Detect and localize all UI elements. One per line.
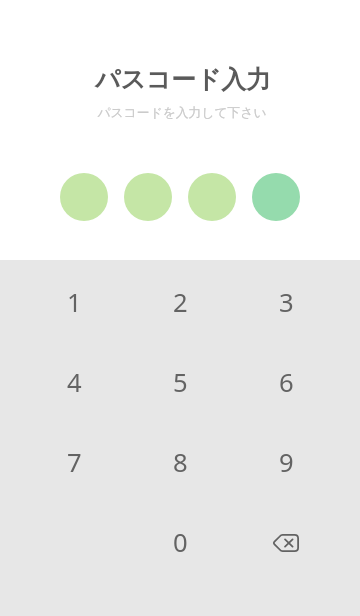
button[interactable]: 1 — [21, 262, 127, 342]
button[interactable]: 0 — [127, 502, 233, 582]
staticText: 9 — [279, 445, 294, 480]
button[interactable]: 2 — [127, 262, 233, 342]
button[interactable]: 5 — [127, 342, 233, 422]
button[interactable]: 4 — [21, 342, 127, 422]
button[interactable]: 7 — [21, 422, 127, 502]
staticText: 6 — [279, 365, 294, 400]
staticText: 5 — [173, 365, 188, 400]
staticText: 7 — [67, 445, 82, 480]
staticText: 0 — [173, 525, 188, 560]
staticText: 4 — [67, 365, 82, 400]
button[interactable]: 3 — [233, 262, 339, 342]
button[interactable]: Delete — [233, 502, 339, 582]
button[interactable]: 9 — [233, 422, 339, 502]
staticText: 2 — [173, 285, 188, 320]
staticText: パスコード入力 — [95, 64, 271, 95]
staticText: 3 — [279, 285, 294, 320]
staticText: 1 — [67, 285, 82, 320]
button[interactable]: 8 — [127, 422, 233, 502]
button[interactable]: 6 — [233, 342, 339, 422]
staticText: 8 — [173, 445, 188, 480]
staticText: パスコードを入力して下さい — [97, 105, 267, 121]
